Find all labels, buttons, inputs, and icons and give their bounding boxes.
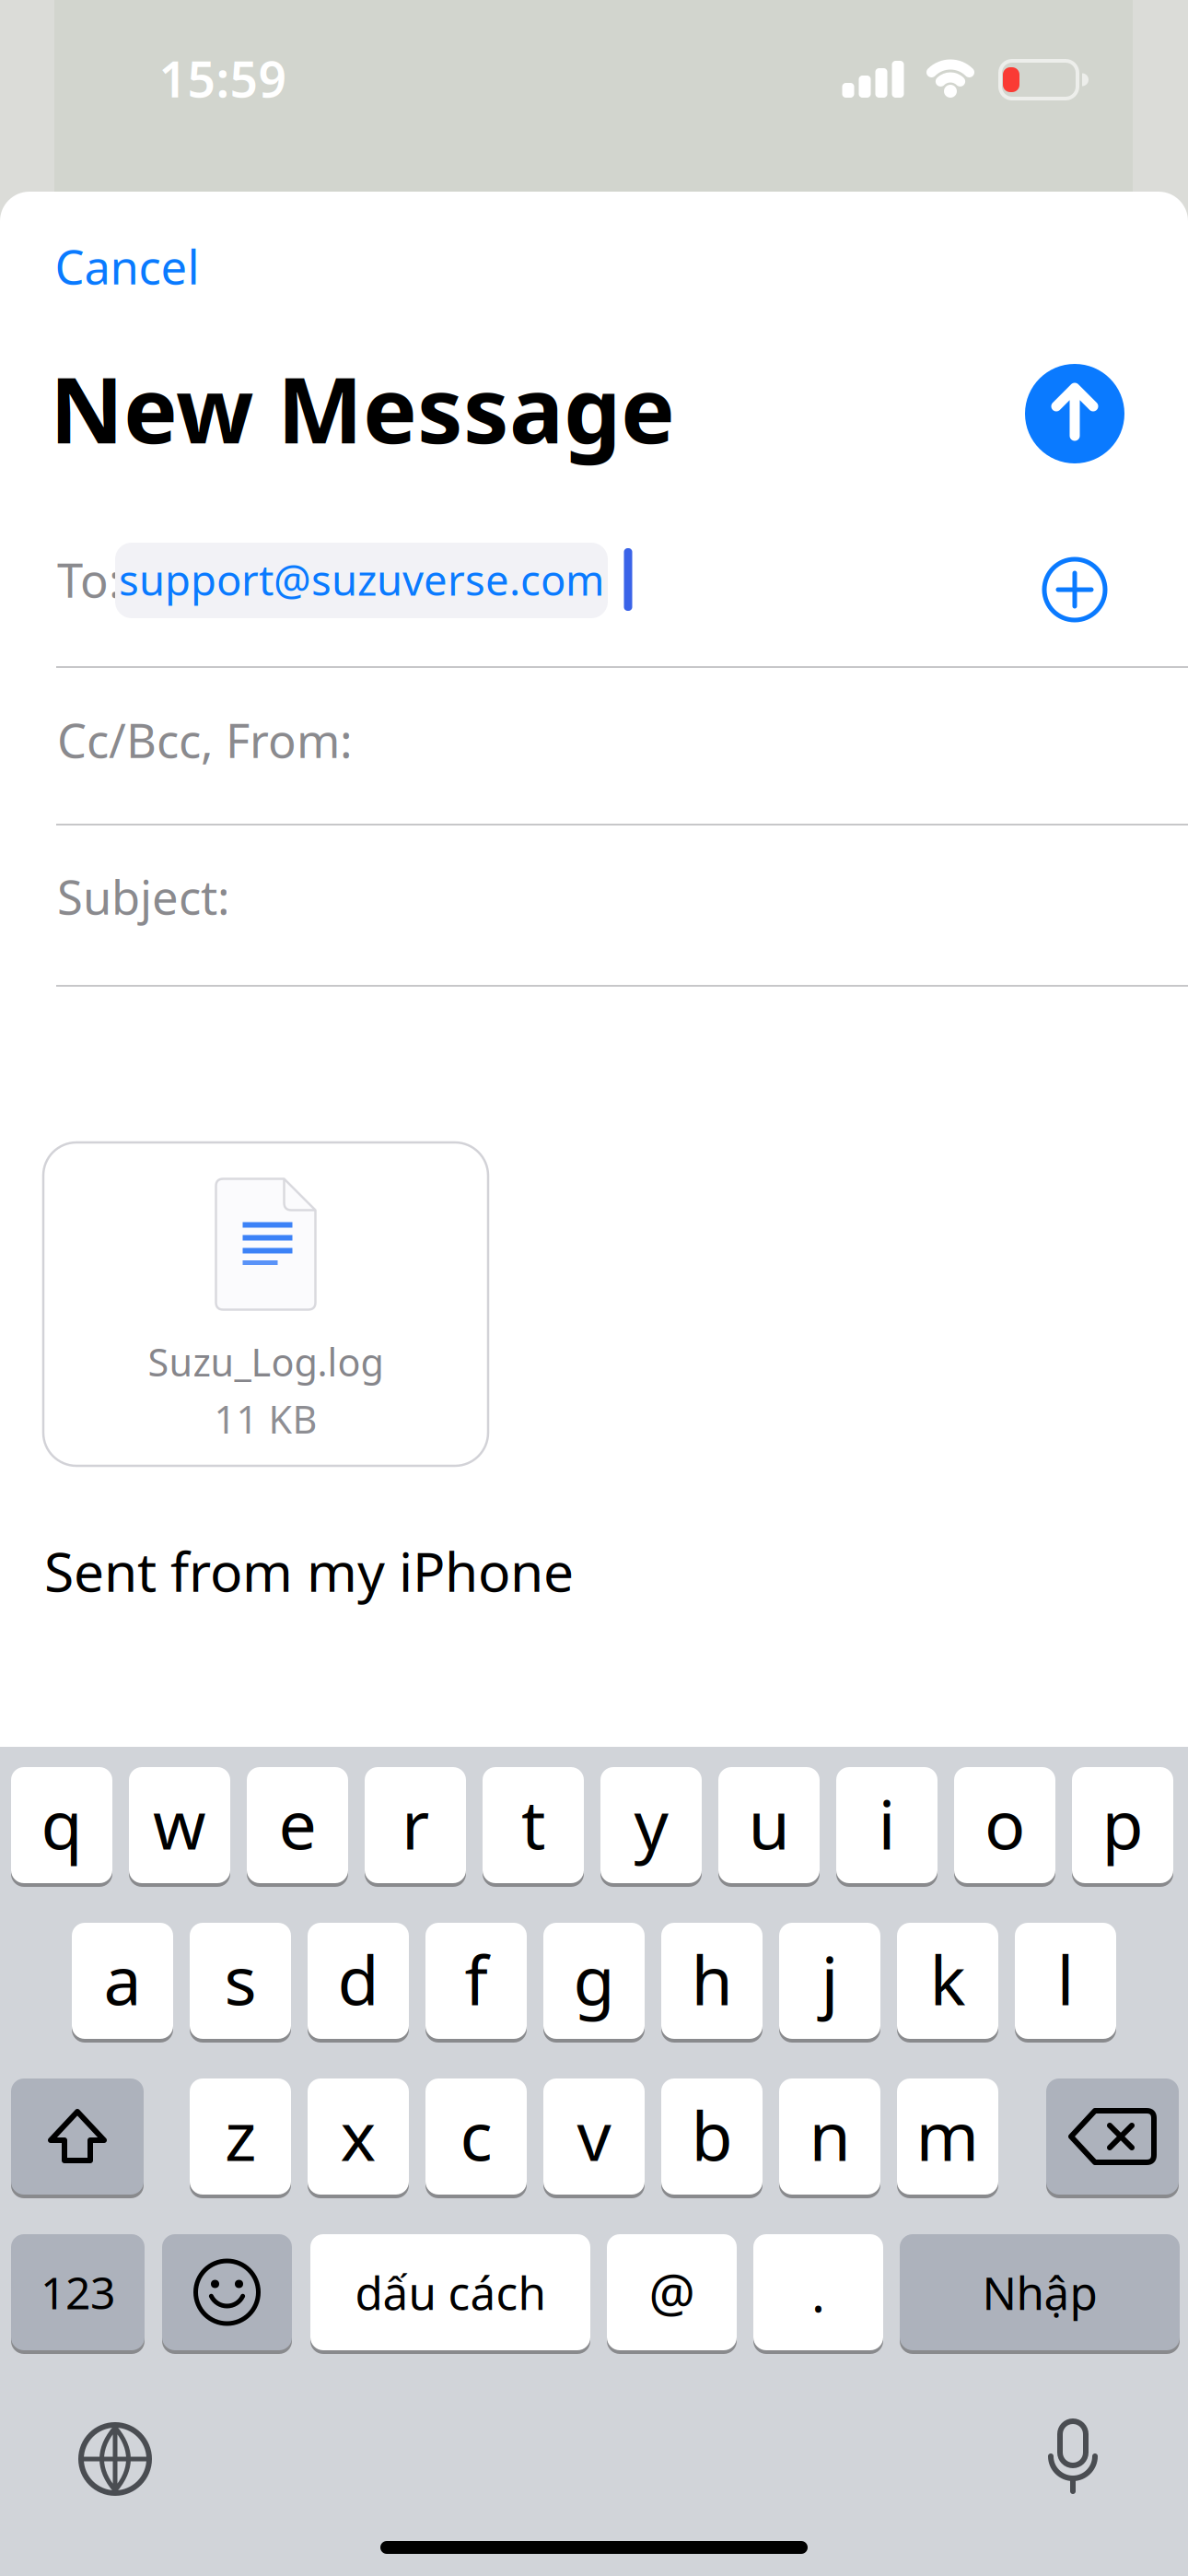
staticText: s (224, 1934, 256, 2024)
staticText: j (821, 1934, 839, 2024)
button[interactable]: a (72, 1921, 173, 2041)
staticText: New Message (50, 348, 675, 468)
button[interactable]: e (247, 1765, 348, 1885)
button[interactable]: Numbers (11, 2232, 145, 2352)
button[interactable]: r (365, 1765, 466, 1885)
staticText: l (1057, 1934, 1074, 2024)
staticText: d (338, 1934, 379, 2024)
button[interactable]: v (543, 2077, 645, 2196)
staticText: Subject: (57, 865, 230, 927)
button[interactable]: n (779, 2077, 880, 2196)
staticText: 11 KB (214, 1394, 317, 1444)
staticText: y (634, 1778, 668, 1868)
button[interactable]: b (661, 2077, 763, 2196)
button[interactable]: k (897, 1921, 998, 2041)
button[interactable]: . (753, 2232, 883, 2352)
button[interactable]: s (190, 1921, 291, 2041)
button[interactable]: c (425, 2077, 527, 2196)
staticText: Sent from my iPhone (44, 1535, 574, 1607)
button[interactable]: Cancel (55, 235, 199, 297)
staticText: t (521, 1778, 545, 1868)
staticText: Cancel (55, 235, 199, 297)
button[interactable]: Shift (11, 2077, 144, 2196)
button[interactable]: y (600, 1765, 702, 1885)
button[interactable]: Delete (1046, 2077, 1179, 2196)
staticText: v (577, 2090, 611, 2180)
button[interactable]: Emoji (162, 2232, 292, 2352)
button[interactable]: w (129, 1765, 230, 1885)
staticText: m (916, 2090, 979, 2180)
button[interactable]: Return (900, 2232, 1180, 2352)
button[interactable]: h (661, 1921, 763, 2041)
staticText: r (402, 1778, 429, 1868)
button[interactable]: d (308, 1921, 409, 2041)
button[interactable]: f (425, 1921, 527, 2041)
staticText: @ (649, 2258, 695, 2327)
staticText: 123 (41, 2263, 115, 2322)
staticText: a (104, 1934, 141, 2024)
staticText: To: (57, 549, 122, 611)
button[interactable]: Dictation (1045, 2419, 1101, 2497)
button[interactable]: i (836, 1765, 938, 1885)
button[interactable]: Space (310, 2232, 590, 2352)
staticText: Nhập (982, 2262, 1097, 2322)
staticText: z (225, 2090, 256, 2180)
staticText: n (809, 2090, 850, 2180)
button[interactable]: z (190, 2077, 291, 2196)
button[interactable]: t (483, 1765, 584, 1885)
button[interactable]: q (11, 1765, 112, 1885)
staticText: b (691, 2090, 733, 2180)
staticText: p (1102, 1778, 1143, 1868)
button[interactable]: l (1015, 1921, 1116, 2041)
button[interactable]: Next keyboard (78, 2422, 152, 2496)
staticText: 15:59 (159, 46, 287, 111)
staticText: support@suzuverse.com (119, 552, 604, 607)
button[interactable]: Cc/Bcc, From: (0, 0, 1188, 2576)
button[interactable]: j (779, 1921, 880, 2041)
staticText: h (691, 1934, 733, 2024)
button[interactable]: Add contact (1044, 559, 1105, 620)
button[interactable]: g (543, 1921, 645, 2041)
button[interactable]: o (954, 1765, 1055, 1885)
button[interactable]: m (897, 2077, 998, 2196)
staticText: k (930, 1934, 966, 2024)
button[interactable]: u (718, 1765, 820, 1885)
staticText: q (41, 1778, 82, 1868)
staticText: dấu cách (355, 2262, 546, 2322)
staticText: i (878, 1778, 896, 1868)
staticText: u (748, 1778, 790, 1868)
button[interactable]: @ (607, 2232, 737, 2352)
staticText: . (811, 2258, 825, 2327)
staticText: Cc/Bcc, From: (57, 709, 353, 771)
button[interactable]: Subject: (0, 0, 1188, 2576)
staticText: g (573, 1934, 615, 2024)
staticText: Suzu_Log.log (148, 1336, 384, 1387)
staticText: f (465, 1934, 488, 2024)
staticText: c (460, 2090, 492, 2180)
button[interactable]: Send (1025, 364, 1124, 463)
staticText: w (153, 1778, 206, 1868)
staticText: o (984, 1778, 1025, 1868)
button[interactable]: Attachment Suzu_Log.log (43, 1142, 488, 1466)
button[interactable]: x (308, 2077, 409, 2196)
staticText: e (279, 1778, 316, 1868)
button[interactable]: p (1072, 1765, 1173, 1885)
staticText: x (340, 2090, 376, 2180)
